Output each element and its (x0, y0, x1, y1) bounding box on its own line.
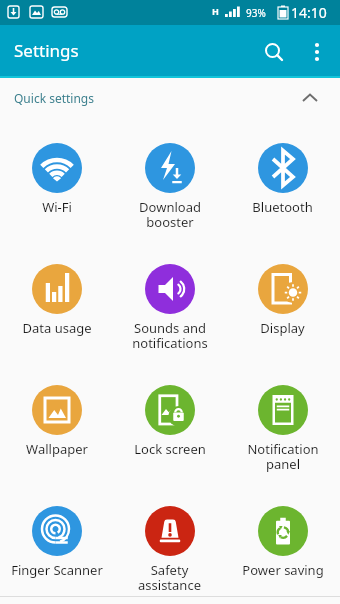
button[interactable]: Wallpaper (0, 360, 113, 481)
staticText: Finger Scanner (11, 561, 103, 579)
staticText: Lock screen (134, 440, 206, 458)
staticText: Notification panel (247, 440, 319, 473)
button[interactable]: Quick settings (0, 78, 340, 118)
staticText: Wi-Fi (42, 198, 72, 216)
staticText: 14:10 (291, 3, 327, 22)
staticText: Sounds and notifications (132, 319, 208, 352)
staticText: Display (260, 319, 305, 337)
button[interactable]: Sounds and notifications (113, 239, 226, 360)
staticText: Download booster (139, 198, 201, 231)
button[interactable]: Lock screen (113, 360, 226, 481)
staticText: Quick settings (14, 90, 94, 106)
button[interactable]: Safety assistance (113, 481, 226, 596)
staticText: Data usage (22, 319, 92, 337)
button[interactable]: Display (226, 239, 339, 360)
staticText: Bluetooth (252, 198, 313, 216)
button[interactable]: Notification panel (226, 360, 339, 481)
button[interactable] (254, 25, 294, 78)
button[interactable]: Bluetooth (226, 118, 339, 239)
staticText: Settings (14, 39, 79, 62)
button[interactable]: Finger Scanner (0, 481, 113, 596)
button[interactable]: Data usage (0, 239, 113, 360)
staticText: H (212, 5, 219, 17)
staticText: 93% (246, 6, 266, 20)
staticText: Safety assistance (138, 561, 201, 594)
staticText: Power saving (242, 561, 324, 579)
button[interactable]: Wi-Fi (0, 118, 113, 239)
button[interactable]: Download booster (113, 118, 226, 239)
button[interactable] (294, 25, 340, 78)
staticText: Wallpaper (26, 440, 88, 458)
button[interactable]: Power saving (226, 481, 339, 596)
